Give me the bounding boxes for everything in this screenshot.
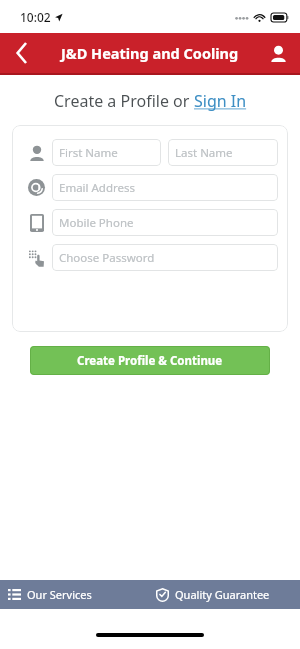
staticText: Email Address [59,180,136,196]
staticText: 10:02 [20,9,51,25]
staticText: Our Services [27,587,92,602]
button[interactable]: Email Address [52,174,278,201]
button[interactable]: Last Name [168,139,278,166]
button[interactable]: Sign In [194,90,247,112]
button[interactable]: First Name [52,139,161,166]
staticText: Last Name [175,145,233,161]
button[interactable]: Mobile Phone [52,209,278,236]
staticText: Create a Profile or [54,90,194,112]
staticText: J&D Heating and Cooling [61,43,239,63]
staticText: Quality Guarantee [175,587,270,602]
staticText: Mobile Phone [59,215,134,231]
button[interactable]: Back [0,33,44,73]
button[interactable]: Choose Password [52,244,278,271]
staticText: Choose Password [59,250,155,266]
staticText: Create Profile & Continue [77,353,223,369]
button[interactable]: Account [256,33,300,73]
button[interactable]: Quality Guarantee [150,580,300,609]
button[interactable]: Our Services [0,580,150,609]
staticText: First Name [59,145,118,161]
button[interactable]: Create Profile & Continue [30,346,270,375]
